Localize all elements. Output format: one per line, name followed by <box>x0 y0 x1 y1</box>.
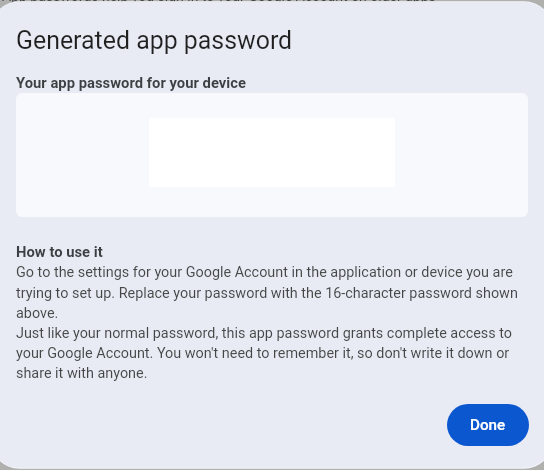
staticText: Your app password for your device <box>16 74 246 91</box>
staticText: Done <box>470 416 506 434</box>
staticText: App passwords help you sign in to your G… <box>2 0 436 4</box>
staticText: Generated app password <box>16 26 293 55</box>
staticText: Go to the settings for your Google Accou… <box>16 264 528 381</box>
staticText: How to use it <box>16 243 103 260</box>
button[interactable]: Done <box>447 404 529 446</box>
